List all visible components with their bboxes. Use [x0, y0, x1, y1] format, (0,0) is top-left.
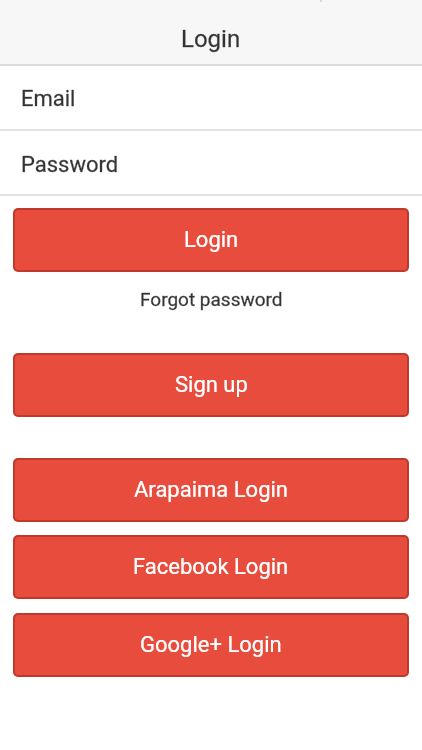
button[interactable]: Login [15, 210, 407, 270]
staticText: Forgot password [140, 288, 283, 310]
button[interactable]: Arapaima Login [15, 460, 407, 520]
staticText: Login [181, 25, 241, 53]
staticText: Password [21, 152, 119, 178]
staticText: Arapaima Login [134, 477, 288, 503]
staticText: Sign up [175, 372, 248, 398]
staticText: Login [181, 25, 241, 53]
staticText: Facebook Login [133, 554, 289, 580]
staticText: Password [21, 152, 119, 178]
button[interactable]: Facebook Login [15, 537, 407, 597]
staticText: Email [21, 86, 76, 112]
button[interactable]: Sign up [15, 355, 407, 415]
button[interactable]: Forgot password [0, 286, 422, 312]
staticText: Login [184, 227, 239, 253]
button[interactable]: Password [0, 131, 422, 194]
staticText: Forgot password [140, 288, 283, 310]
button[interactable]: Email [0, 66, 422, 129]
staticText: Google+ Login [140, 632, 282, 658]
staticText: Email [21, 86, 76, 112]
button[interactable]: Google+ Login [15, 615, 407, 675]
